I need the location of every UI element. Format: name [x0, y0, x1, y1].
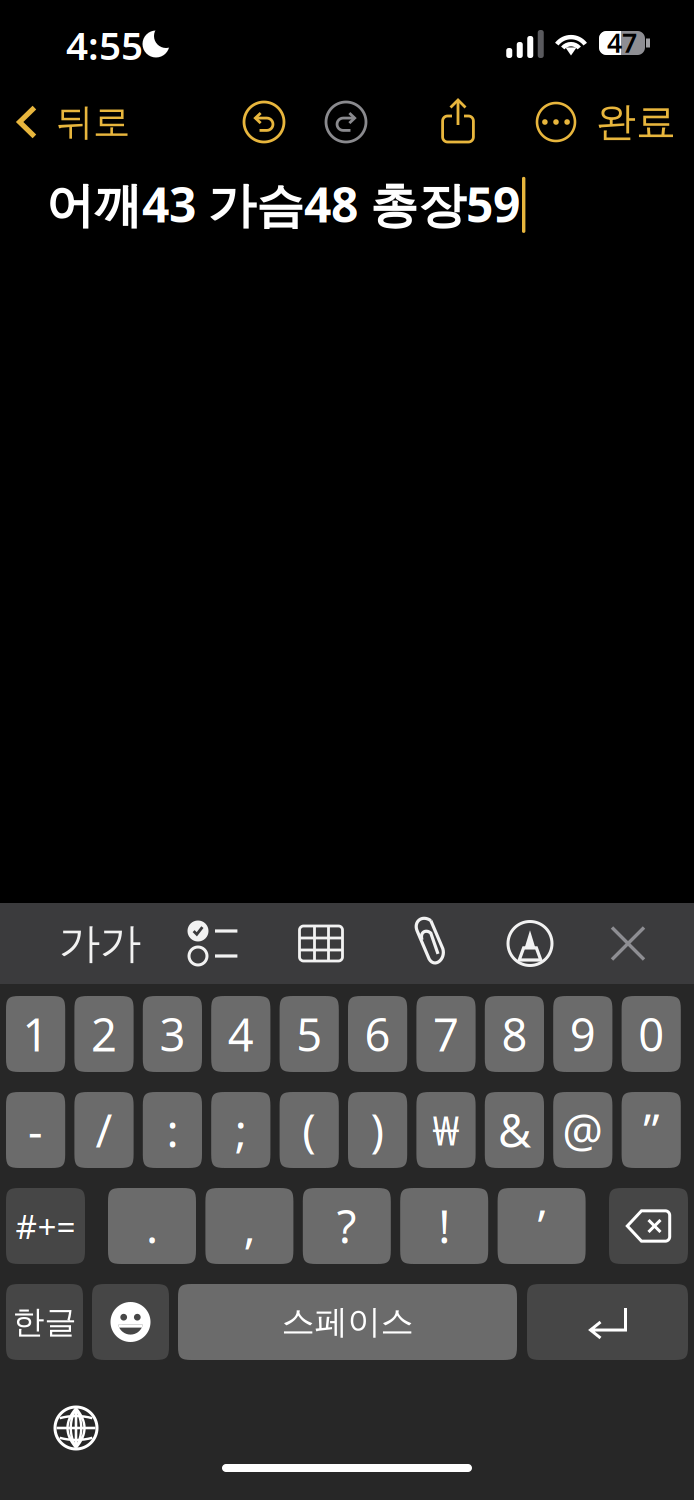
button[interactable]: / — [74, 1092, 134, 1168]
staticText: ’ — [538, 1196, 546, 1256]
button[interactable]: @ — [553, 1092, 612, 1168]
staticText: ? — [337, 1196, 357, 1256]
staticText: ₩ — [432, 1103, 459, 1156]
button[interactable]: : — [143, 1092, 202, 1168]
button[interactable]: , — [205, 1188, 293, 1264]
staticText: 스페이스 — [281, 1301, 413, 1342]
button[interactable]: Share — [440, 99, 476, 145]
button[interactable]: Redo — [325, 101, 367, 143]
button[interactable]: Return — [527, 1284, 688, 1360]
button[interactable]: - — [6, 1092, 65, 1168]
button[interactable]: 완료 — [592, 94, 680, 150]
button[interactable]: Dismiss keyboard — [588, 908, 668, 978]
staticText: 뒤로 — [56, 99, 130, 145]
staticText: 7 — [433, 1004, 459, 1064]
staticText: / — [95, 1100, 112, 1160]
staticText: & — [498, 1100, 531, 1160]
button[interactable]: Markup — [488, 908, 572, 978]
button[interactable]: ( — [280, 1092, 339, 1168]
staticText: 1 — [23, 1004, 49, 1064]
staticText: 6 — [365, 1004, 391, 1064]
staticText: 9 — [570, 1004, 596, 1064]
staticText: : — [166, 1100, 178, 1160]
button[interactable]: Checklist — [171, 908, 255, 978]
button[interactable]: 5 — [280, 996, 339, 1072]
button[interactable]: Emoji — [92, 1284, 169, 1360]
staticText: ” — [643, 1100, 659, 1160]
button[interactable]: Undo — [243, 101, 285, 143]
staticText: 47 — [607, 25, 637, 60]
button[interactable]: 0 — [622, 996, 681, 1072]
button[interactable]: 뒤로 — [17, 94, 177, 150]
staticText: 어깨43 가슴48 총장59 — [46, 172, 520, 236]
button[interactable]: ’ — [498, 1188, 586, 1264]
staticText: ; — [235, 1100, 247, 1160]
staticText: . — [146, 1196, 158, 1256]
staticText: , — [243, 1196, 255, 1256]
staticText: 5 — [296, 1004, 322, 1064]
button[interactable]: More — [536, 102, 576, 142]
button[interactable]: #+= — [6, 1188, 85, 1264]
button[interactable]: ₩ — [416, 1092, 476, 1168]
button[interactable]: Table — [279, 908, 363, 978]
button[interactable]: 1 — [6, 996, 65, 1072]
button[interactable]: 한글 — [6, 1284, 83, 1360]
button[interactable]: 3 — [143, 996, 202, 1072]
staticText: 0 — [638, 1004, 664, 1064]
button[interactable]: . — [108, 1188, 196, 1264]
staticText: @ — [562, 1100, 603, 1160]
button[interactable]: ? — [303, 1188, 391, 1264]
button[interactable]: 6 — [348, 996, 407, 1072]
button[interactable]: 가가 — [52, 908, 148, 978]
button[interactable]: 8 — [485, 996, 544, 1072]
staticText: 8 — [501, 1004, 527, 1064]
button[interactable]: 7 — [416, 996, 476, 1072]
staticText: 4 — [228, 1004, 254, 1064]
staticText: ( — [302, 1100, 316, 1160]
staticText: 한글 — [12, 1302, 76, 1342]
button[interactable]: 스페이스 — [178, 1284, 517, 1360]
staticText: ! — [438, 1196, 450, 1256]
button[interactable]: ” — [622, 1092, 681, 1168]
button[interactable]: 4 — [211, 996, 270, 1072]
staticText: - — [28, 1100, 43, 1160]
button[interactable]: ) — [348, 1092, 407, 1168]
staticText: #+= — [15, 1204, 75, 1248]
button[interactable]: Attach — [388, 908, 472, 978]
staticText: 3 — [159, 1004, 185, 1064]
button[interactable]: Switch keyboard — [54, 1406, 98, 1450]
staticText: 4:55 — [66, 19, 143, 71]
button[interactable]: Delete — [609, 1188, 688, 1264]
staticText: ) — [371, 1100, 385, 1160]
button[interactable]: ; — [211, 1092, 270, 1168]
staticText: 완료 — [596, 97, 676, 146]
button[interactable]: 9 — [553, 996, 612, 1072]
button[interactable]: & — [485, 1092, 544, 1168]
staticText: 가가 — [59, 918, 141, 969]
button[interactable]: ! — [400, 1188, 488, 1264]
button[interactable]: 2 — [74, 996, 134, 1072]
staticText: 2 — [91, 1004, 117, 1064]
